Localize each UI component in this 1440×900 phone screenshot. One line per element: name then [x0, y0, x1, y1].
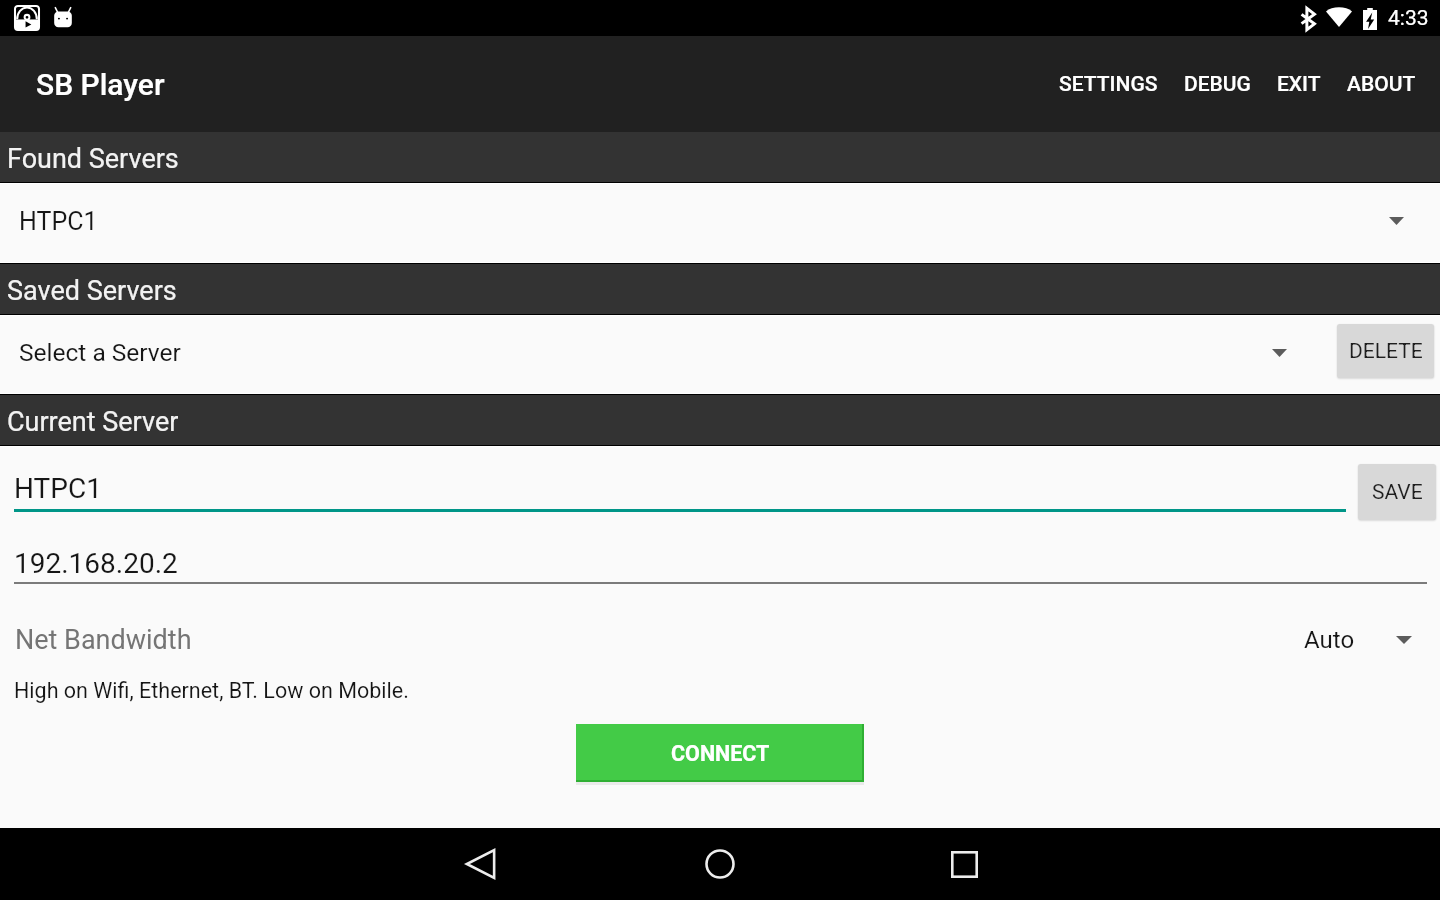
staticText: ABOUT — [1347, 72, 1416, 97]
staticText: HTPC1 — [19, 207, 98, 236]
staticText: DELETE — [1349, 339, 1423, 364]
button[interactable]: EXIT — [1264, 56, 1334, 113]
staticText: Net Bandwidth — [15, 624, 192, 656]
button[interactable]: Home — [672, 828, 768, 900]
button[interactable]: CONNECT — [576, 724, 864, 782]
staticText: Found Servers — [7, 143, 179, 175]
staticText: CONNECT — [671, 741, 770, 766]
button[interactable]: SAVE — [1358, 464, 1436, 520]
staticText: DEBUG — [1184, 72, 1251, 97]
staticText: Select a Server — [19, 338, 181, 367]
button[interactable]: Back — [432, 828, 528, 900]
staticText: 192.168.20.2 — [14, 547, 178, 580]
button[interactable]: Select a Server — [0, 316, 1337, 393]
staticText: SAVE — [1372, 480, 1423, 505]
staticText: 4:33 — [1388, 6, 1429, 31]
staticText: SETTINGS — [1059, 72, 1158, 97]
button[interactable]: Net Bandwidth — [0, 602, 1440, 678]
button[interactable]: HTPC1 — [0, 184, 1440, 262]
staticText: Saved Servers — [7, 275, 177, 307]
button[interactable]: DELETE — [1337, 324, 1434, 378]
staticText: EXIT — [1277, 72, 1321, 97]
staticText: Current Server — [7, 406, 179, 438]
staticText: SB Player — [36, 67, 165, 102]
button[interactable]: Recent apps — [916, 828, 1012, 900]
staticText: High on Wifi, Ethernet, BT. Low on Mobil… — [14, 678, 409, 703]
staticText: HTPC1 — [14, 472, 102, 505]
button[interactable]: SETTINGS — [1046, 56, 1171, 113]
staticText: Auto — [1304, 626, 1355, 654]
button[interactable]: DEBUG — [1171, 56, 1264, 113]
button[interactable]: ABOUT — [1334, 56, 1429, 113]
